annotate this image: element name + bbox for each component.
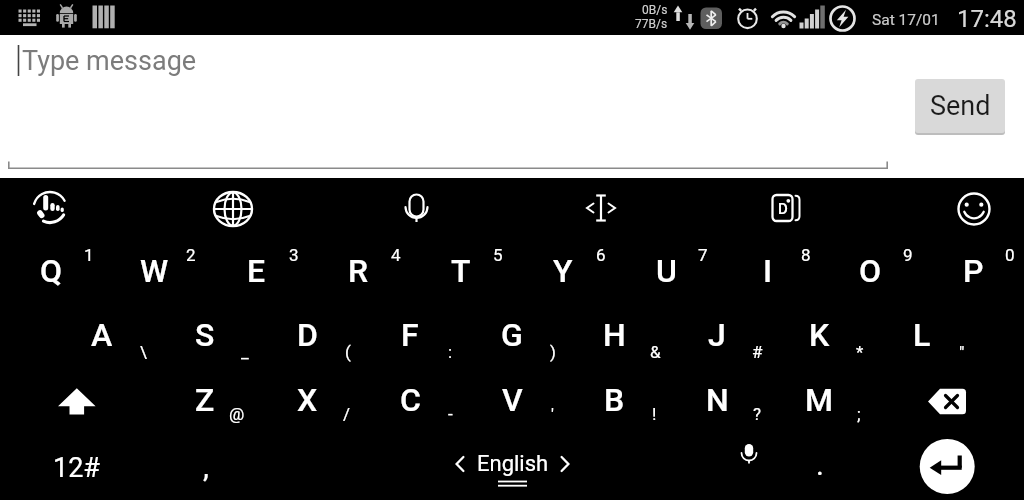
button[interactable]: B: [563, 369, 665, 431]
staticText: !: [652, 404, 657, 424]
button[interactable]: P: [922, 240, 1024, 302]
button[interactable]: [0, 178, 1024, 500]
staticText: F: [401, 316, 419, 354]
staticText: Send: [930, 90, 991, 122]
button[interactable]: [751, 183, 821, 235]
button[interactable]: D: [256, 304, 358, 366]
staticText: 8: [801, 245, 811, 265]
staticText: (: [345, 342, 351, 362]
staticText: Sat 17/01: [872, 11, 940, 29]
staticText: 4: [391, 245, 401, 265]
button[interactable]: [939, 183, 1009, 235]
staticText: *: [856, 342, 864, 362]
button[interactable]: M: [768, 369, 870, 431]
staticText: ': [551, 404, 554, 424]
button[interactable]: [566, 183, 636, 235]
button[interactable]: S: [154, 304, 256, 366]
button[interactable]: T: [410, 240, 512, 302]
button[interactable]: X: [256, 369, 358, 431]
button[interactable]: [15, 183, 85, 235]
staticText: .: [816, 447, 824, 482]
staticText: @: [229, 404, 245, 424]
staticText: 1: [84, 245, 94, 265]
staticText: English: [477, 451, 549, 477]
staticText: J: [708, 316, 726, 354]
button[interactable]: English: [403, 432, 623, 496]
staticText: E: [247, 252, 266, 290]
staticText: L: [913, 316, 931, 354]
button[interactable]: E: [205, 240, 307, 302]
staticText: U: [656, 252, 677, 290]
staticText: T: [451, 252, 471, 290]
staticText: V: [502, 381, 523, 419]
staticText: ,: [203, 449, 209, 484]
staticText: K: [809, 316, 830, 354]
button[interactable]: R: [307, 240, 409, 302]
button[interactable]: [0, 36, 890, 176]
staticText: &: [650, 342, 661, 362]
staticText: _: [241, 342, 249, 362]
staticText: 17:48: [957, 5, 1017, 33]
staticText: A: [91, 316, 113, 354]
button[interactable]: C: [359, 369, 461, 431]
button[interactable]: G: [461, 304, 563, 366]
button[interactable]: Q: [0, 240, 102, 302]
staticText: ?: [753, 404, 762, 424]
staticText: X: [297, 381, 318, 419]
staticText: Z: [195, 381, 215, 419]
staticText: \: [140, 342, 147, 362]
button[interactable]: U: [615, 240, 717, 302]
button[interactable]: H: [563, 304, 665, 366]
button[interactable]: L: [871, 304, 973, 366]
staticText: 77B/s: [635, 17, 668, 31]
staticText: 9: [903, 245, 913, 265]
staticText: Q: [40, 252, 63, 290]
button[interactable]: F: [359, 304, 461, 366]
staticText: ;: [857, 404, 861, 424]
staticText: I: [763, 252, 773, 290]
button[interactable]: [198, 183, 268, 235]
button[interactable]: J: [666, 304, 768, 366]
button[interactable]: [871, 368, 1024, 432]
staticText: 3: [289, 245, 299, 265]
staticText: 6: [596, 245, 606, 265]
staticText: N: [706, 381, 729, 419]
button[interactable]: K: [768, 304, 870, 366]
button[interactable]: Y: [512, 240, 614, 302]
staticText: -: [448, 404, 453, 424]
staticText: 12#: [53, 452, 100, 484]
staticText: Type message: [22, 45, 197, 77]
staticText: 7: [698, 245, 708, 265]
button[interactable]: [903, 434, 993, 498]
staticText: :: [448, 342, 453, 362]
staticText: H: [603, 316, 626, 354]
button[interactable]: [0, 368, 153, 432]
button[interactable]: O: [819, 240, 921, 302]
staticText: ": [959, 342, 965, 362]
button[interactable]: [700, 434, 800, 498]
button[interactable]: A: [51, 304, 153, 366]
staticText: C: [400, 381, 421, 419]
staticText: ): [550, 342, 556, 362]
button[interactable]: I: [717, 240, 819, 302]
button[interactable]: N: [666, 369, 768, 431]
button[interactable]: ,: [156, 434, 256, 498]
button[interactable]: [382, 183, 452, 235]
staticText: 2: [186, 245, 196, 265]
staticText: Y: [553, 252, 573, 290]
staticText: /: [343, 404, 351, 424]
staticText: D: [297, 316, 318, 354]
button[interactable]: .: [770, 432, 870, 496]
button[interactable]: Z: [154, 369, 256, 431]
staticText: 5: [493, 245, 503, 265]
button[interactable]: 12#: [1, 436, 151, 500]
staticText: R: [348, 252, 368, 290]
staticText: #: [752, 342, 763, 362]
staticText: S: [195, 316, 215, 354]
button[interactable]: V: [461, 369, 563, 431]
staticText: O: [859, 252, 882, 290]
staticText: M: [805, 381, 834, 419]
button[interactable]: Send: [915, 79, 1005, 133]
staticText: 0B/s: [642, 3, 668, 17]
button[interactable]: W: [103, 240, 205, 302]
